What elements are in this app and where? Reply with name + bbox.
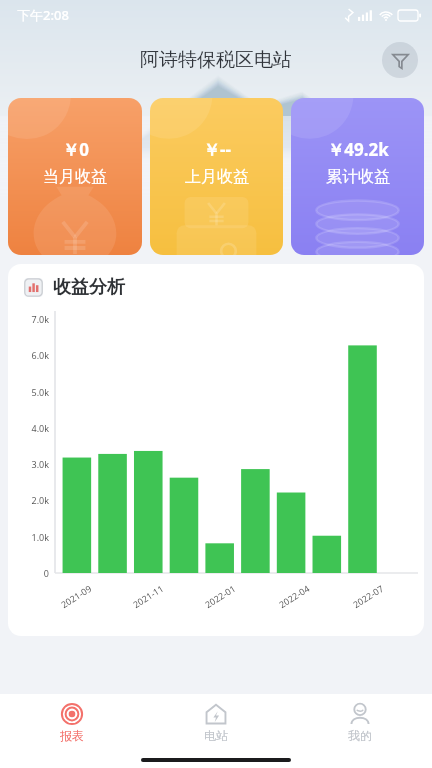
- button[interactable]: 累计收益: [291, 98, 424, 255]
- staticText: 2021-09: [58, 582, 94, 610]
- staticText: 4.0k: [31, 422, 49, 434]
- button[interactable]: 我的: [288, 694, 432, 751]
- staticText: 我的: [348, 728, 372, 743]
- staticText: 下午2:08: [17, 6, 69, 24]
- button[interactable]: 电站: [144, 694, 288, 751]
- staticText: 报表: [60, 728, 84, 743]
- staticText: 累计收益: [326, 167, 390, 187]
- staticText: 7.0k: [31, 313, 49, 325]
- staticText: 2.0k: [31, 494, 49, 506]
- staticText: 2022-01: [202, 582, 238, 610]
- staticText: 上月收益: [185, 167, 249, 187]
- staticText: 2022-04: [276, 582, 312, 610]
- staticText: 电站: [204, 728, 228, 743]
- staticText: 0: [43, 567, 49, 579]
- staticText: ￥0: [62, 138, 89, 161]
- staticText: 2022-07: [350, 582, 386, 610]
- staticText: 3.0k: [31, 458, 49, 470]
- button[interactable]: 报表: [0, 694, 144, 751]
- staticText: ￥49.2k: [327, 138, 389, 161]
- button[interactable]: 上月收益: [150, 98, 283, 255]
- staticText: 当月收益: [43, 167, 107, 187]
- staticText: 1.0k: [31, 531, 49, 543]
- staticText: 5.0k: [31, 386, 49, 398]
- staticText: 收益分析: [53, 276, 125, 299]
- button[interactable]: Filter: [382, 42, 418, 78]
- staticText: ￥--: [203, 138, 231, 161]
- staticText: 2021-11: [130, 582, 166, 610]
- button[interactable]: 当月收益: [8, 98, 142, 255]
- staticText: 阿诗特保税区电站: [140, 48, 292, 72]
- staticText: 6.0k: [31, 349, 49, 361]
